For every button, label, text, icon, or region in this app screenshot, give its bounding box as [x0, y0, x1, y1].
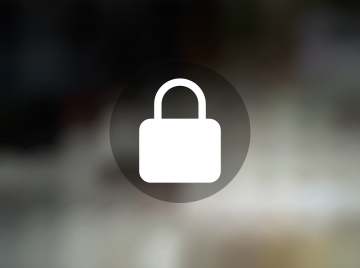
button[interactable]: Locked: [0, 0, 360, 268]
